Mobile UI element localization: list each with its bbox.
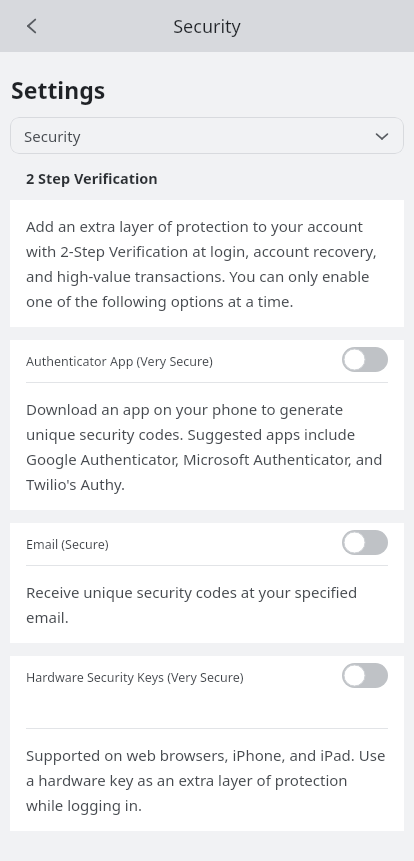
staticText: Security — [24, 126, 374, 146]
button[interactable]: Toggle off — [342, 663, 388, 688]
button[interactable]: Email (Secure) — [10, 523, 404, 565]
staticText: Security — [173, 14, 241, 39]
button[interactable]: Hardware Security Keys (Very Secure) — [10, 656, 404, 728]
button[interactable]: Toggle off — [342, 530, 388, 555]
button[interactable]: Authenticator App (Very Secure) — [10, 340, 404, 382]
staticText: Receive unique security codes at your sp… — [26, 582, 388, 627]
staticText: Authenticator App (Very Secure) — [26, 353, 342, 370]
staticText: Hardware Security Keys (Very Secure) — [26, 669, 342, 686]
staticText: 2 Step Verification — [26, 168, 158, 188]
staticText: Supported on web browsers, iPhone, and i… — [26, 745, 388, 815]
staticText: Download an app on your phone to generat… — [26, 399, 388, 494]
button[interactable]: Security — [10, 117, 404, 154]
button[interactable]: Toggle off — [342, 347, 388, 372]
staticText: Add an extra layer of protection to your… — [26, 216, 388, 311]
staticText: Email (Secure) — [26, 536, 342, 553]
button[interactable]: Back — [14, 8, 50, 44]
staticText: Settings — [11, 74, 106, 105]
